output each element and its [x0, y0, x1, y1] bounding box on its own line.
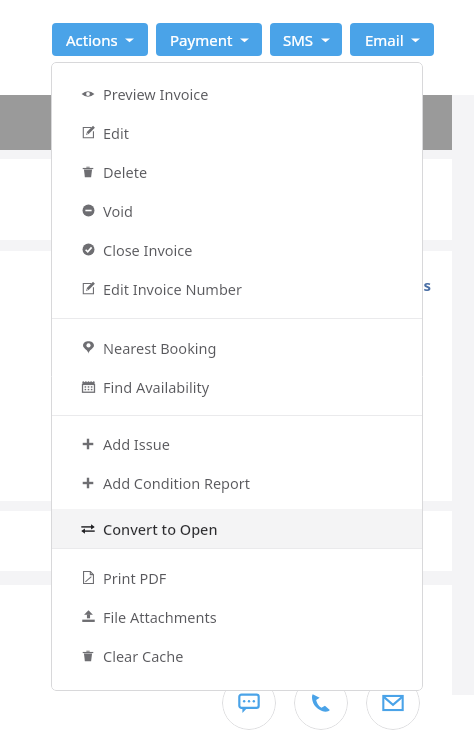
- button[interactable]: File Attachments: [51, 597, 423, 636]
- button[interactable]: Void: [51, 191, 423, 230]
- staticText: Delete: [103, 162, 148, 182]
- button[interactable]: Send SMS: [222, 676, 276, 730]
- button[interactable]: Nearest Booking: [51, 328, 423, 367]
- button[interactable]: Clear Cache: [51, 636, 423, 675]
- button[interactable]: Call: [294, 676, 348, 730]
- staticText: Email: [365, 30, 404, 50]
- staticText: Void: [103, 201, 133, 221]
- button[interactable]: Payment: [156, 23, 262, 56]
- staticText: Edit: [103, 123, 129, 143]
- button[interactable]: Edit: [51, 113, 423, 152]
- button[interactable]: Add Issue: [51, 424, 423, 463]
- staticText: Close Invoice: [103, 240, 193, 260]
- staticText: Edit Invoice Number: [103, 279, 243, 299]
- staticText: Add Issue: [103, 434, 170, 454]
- staticText: Clear Cache: [103, 646, 184, 666]
- button[interactable]: Preview Invoice: [51, 74, 423, 113]
- staticText: Convert to Open: [103, 519, 218, 539]
- staticText: Actions: [66, 30, 118, 50]
- staticText: File Attachments: [103, 607, 217, 627]
- staticText: os: [414, 275, 431, 295]
- button[interactable]: Print PDF: [51, 558, 423, 597]
- button[interactable]: Email: [350, 23, 434, 56]
- button[interactable]: SMS: [270, 23, 342, 56]
- button[interactable]: Edit Invoice Number: [51, 269, 423, 308]
- staticText: Nearest Booking: [103, 338, 217, 358]
- button[interactable]: Send email: [366, 676, 420, 730]
- button[interactable]: Delete: [51, 152, 423, 191]
- staticText: Find Availability: [103, 377, 210, 397]
- staticText: Add Condition Report: [103, 473, 251, 493]
- staticText: Preview Invoice: [103, 84, 209, 104]
- staticText: Print PDF: [103, 568, 167, 588]
- button[interactable]: Close Invoice: [51, 230, 423, 269]
- button[interactable]: Add Condition Report: [51, 463, 423, 502]
- button[interactable]: Convert to Open: [51, 509, 423, 548]
- staticText: SMS: [283, 30, 314, 50]
- button[interactable]: Actions: [52, 23, 148, 56]
- staticText: Payment: [170, 30, 233, 50]
- button[interactable]: Find Availability: [51, 367, 423, 406]
